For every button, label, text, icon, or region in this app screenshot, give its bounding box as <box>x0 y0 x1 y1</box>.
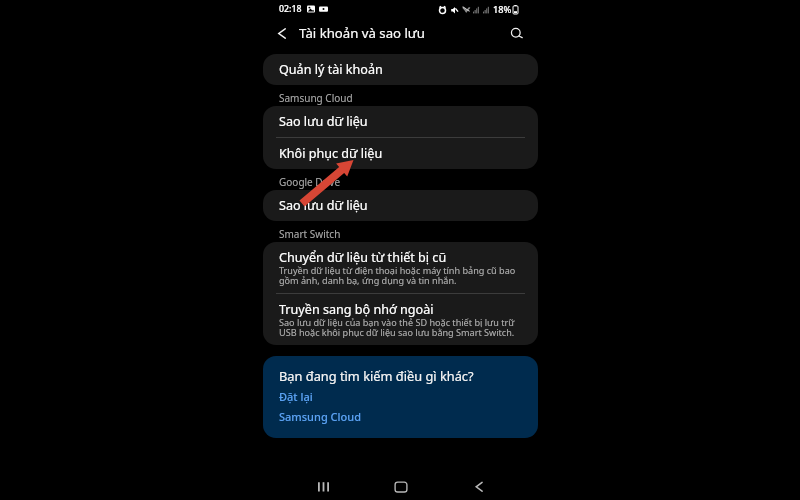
button[interactable]: Chuyển dữ liệu từ thiết bị cũ <box>263 242 538 293</box>
button[interactable]: Samsung Cloud <box>276 406 364 427</box>
staticText: Đặt lại <box>279 389 313 404</box>
button[interactable]: Search <box>502 19 530 47</box>
staticText: Tài khoản và sao lưu <box>299 24 425 42</box>
staticText: Smart Switch <box>279 227 341 241</box>
staticText: 18% <box>493 3 512 16</box>
staticText: Sao lưu dữ liệu <box>279 113 368 130</box>
staticText: Truyền sang bộ nhớ ngoài <box>279 301 434 318</box>
button[interactable]: Home <box>384 470 418 500</box>
staticText: Bạn đang tìm kiếm điều gì khác? <box>279 367 474 384</box>
staticText: Sao lưu dữ liệu <box>279 197 368 214</box>
button[interactable]: Quản lý tài khoản <box>263 54 538 85</box>
button[interactable]: Khôi phục dữ liệu <box>263 138 538 169</box>
staticText: Truyền dữ liệu từ điện thoại hoặc máy tí… <box>279 264 516 287</box>
staticText: Quản lý tài khoản <box>279 61 383 78</box>
button[interactable]: Back <box>464 470 498 500</box>
staticText: 02:18 <box>279 3 302 15</box>
staticText: Samsung Cloud <box>279 91 353 105</box>
button[interactable]: Đặt lại <box>276 386 316 407</box>
staticText: Khôi phục dữ liệu <box>279 145 383 162</box>
staticText: Chuyển dữ liệu từ thiết bị cũ <box>279 249 447 266</box>
button[interactable]: Sao lưu dữ liệu <box>263 106 538 137</box>
button[interactable]: Sao lưu dữ liệu <box>263 190 538 221</box>
staticText: Samsung Cloud <box>279 409 361 424</box>
button[interactable]: Recents <box>306 470 340 500</box>
button[interactable]: Truyền sang bộ nhớ ngoài <box>263 294 538 345</box>
staticText: Google Drive <box>279 175 341 189</box>
staticText: Sao lưu dữ liệu của bạn vào thẻ SD hoặc … <box>279 316 515 339</box>
button[interactable]: Back <box>268 19 296 47</box>
